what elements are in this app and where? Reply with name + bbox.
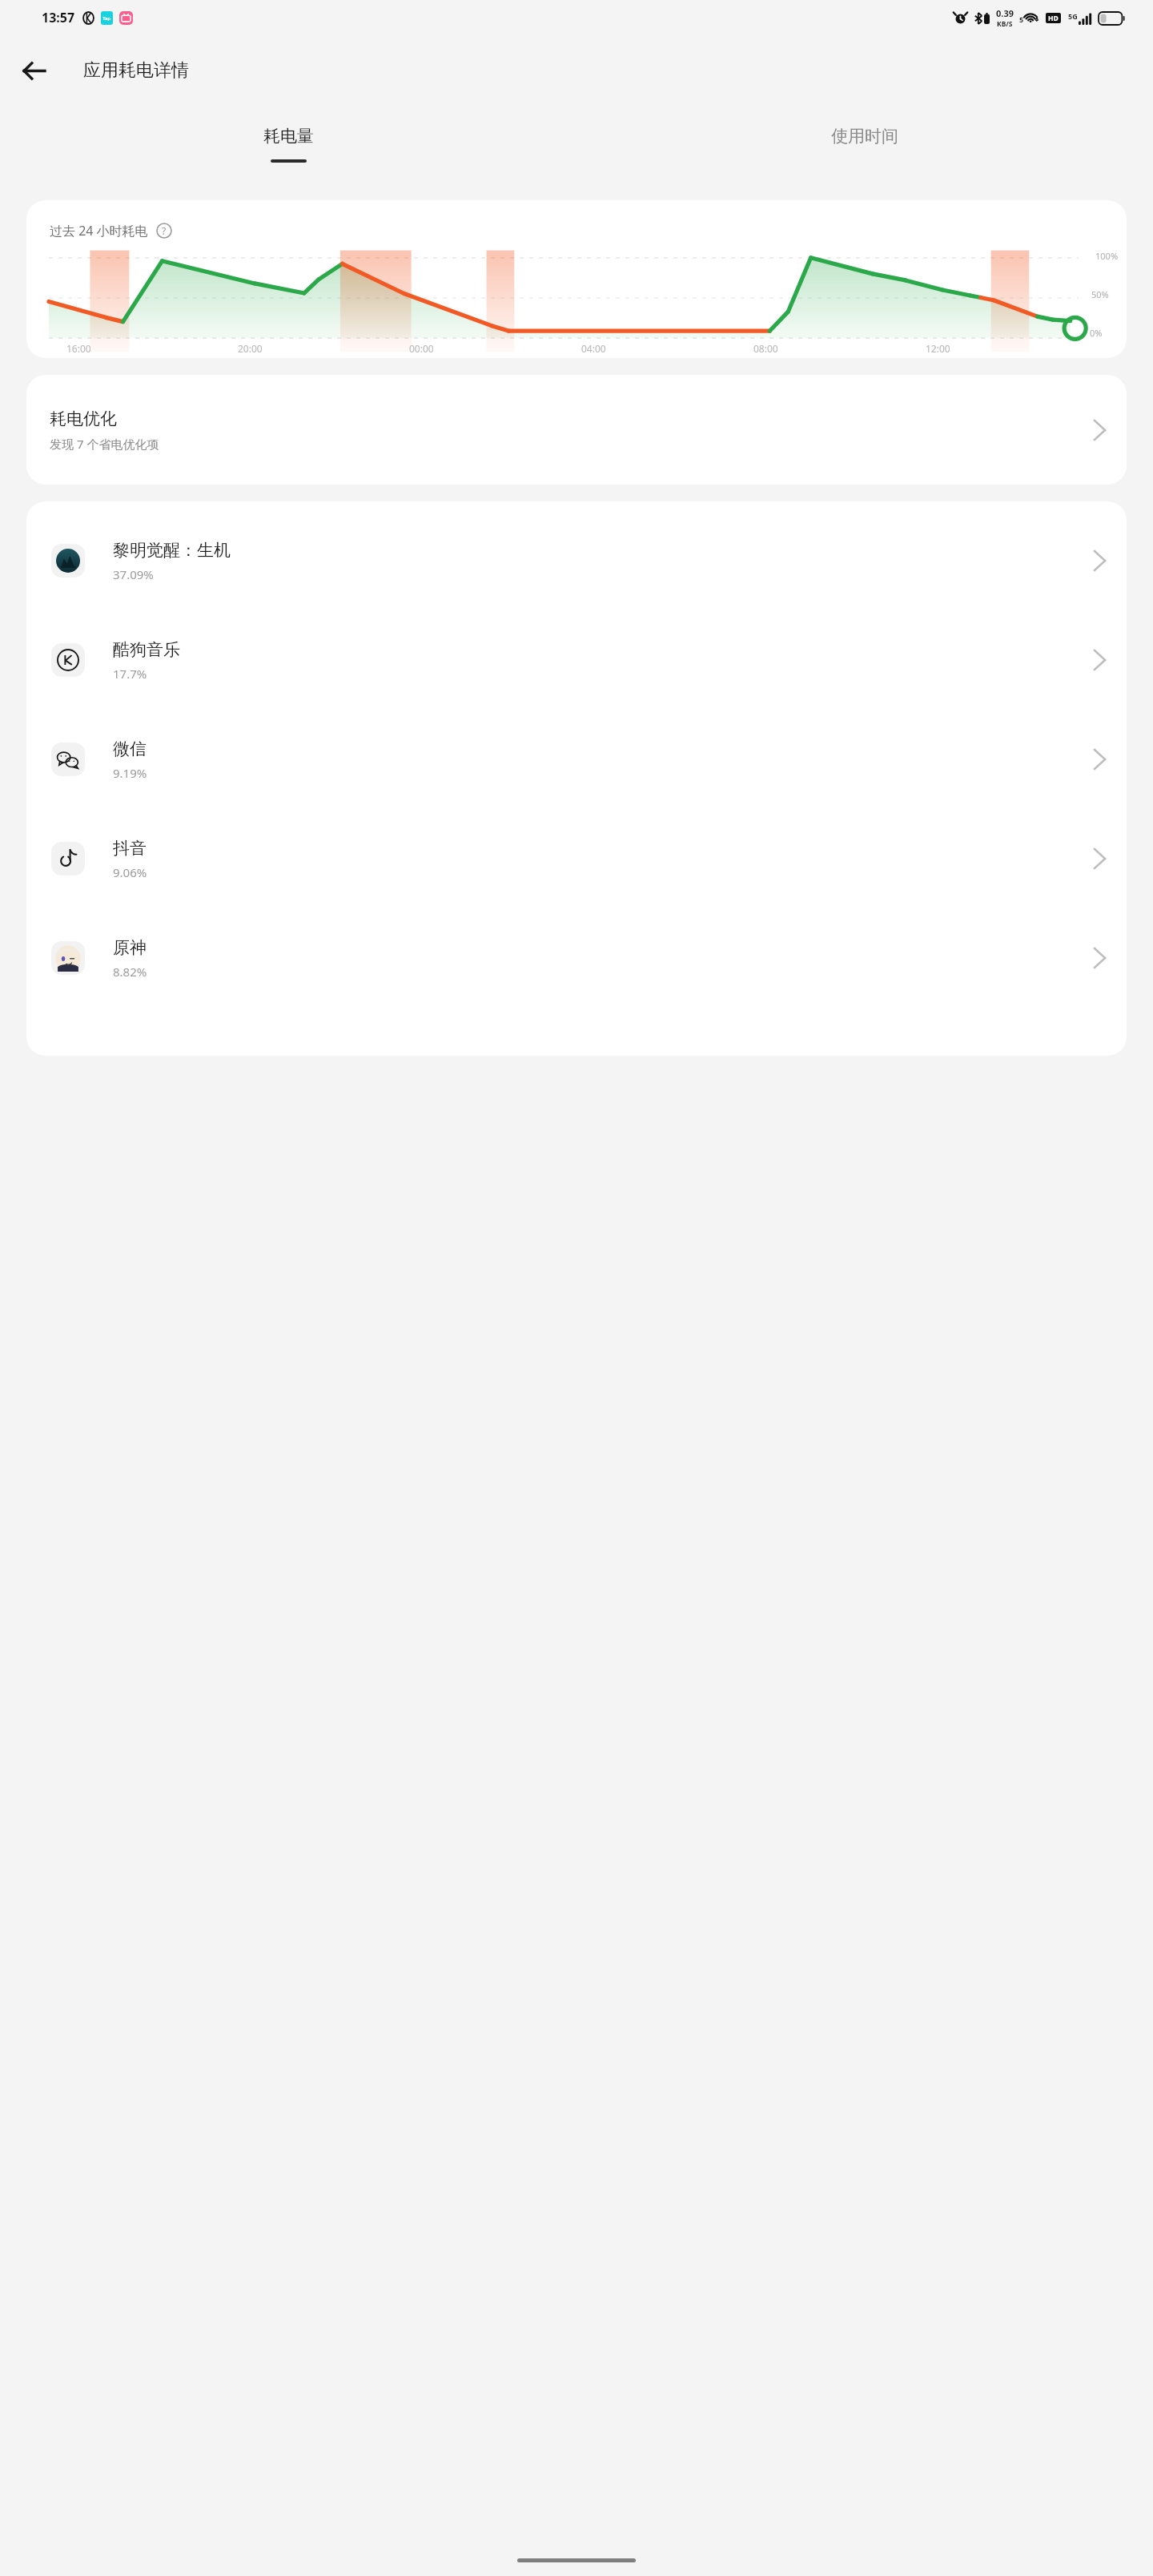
staticText: 16:00 — [66, 342, 91, 355]
button[interactable]: 酷狗音乐 — [26, 610, 1127, 710]
staticText: 耗电优化 — [50, 409, 117, 429]
staticText: 8.82% — [113, 964, 147, 980]
button[interactable]: 微信 — [26, 710, 1127, 809]
button[interactable]: 使用时间 — [576, 106, 1153, 183]
staticText: 9.06% — [113, 864, 147, 880]
button[interactable]: 原神 — [26, 908, 1127, 1008]
staticText: 0.39 — [996, 7, 1014, 19]
staticText: Tap — [102, 15, 111, 22]
staticText: 50% — [1091, 288, 1109, 300]
staticText: 酷狗音乐 — [113, 639, 180, 660]
staticText: 100% — [1095, 250, 1119, 262]
button[interactable]: 黎明觉醒：生机 — [26, 511, 1127, 610]
button[interactable]: 耗电优化 — [26, 375, 1127, 485]
staticText: 00:00 — [409, 342, 434, 355]
staticText: KB/S — [997, 19, 1013, 29]
button[interactable]: 抖音 — [26, 809, 1127, 908]
staticText: 5G — [1068, 11, 1078, 21]
button[interactable]: 说明 — [155, 222, 173, 239]
staticText: 使用时间 — [831, 126, 898, 147]
staticText: 20:00 — [238, 342, 263, 355]
staticText: 12:00 — [926, 342, 950, 355]
staticText: 过去 24 小时耗电 — [50, 222, 148, 239]
staticText: 04:00 — [581, 342, 606, 355]
button[interactable]: 返回 — [11, 48, 56, 93]
staticText: 08:00 — [753, 342, 778, 355]
staticText: 5 — [1019, 14, 1024, 24]
staticText: 原神 — [113, 937, 147, 958]
staticText: 黎明觉醒：生机 — [113, 540, 231, 561]
staticText: 耗电量 — [263, 126, 314, 147]
button[interactable]: 耗电量 — [0, 106, 576, 183]
staticText: 13:57 — [42, 9, 75, 26]
staticText: 应用耗电详情 — [83, 59, 189, 82]
staticText: HD — [1048, 14, 1059, 23]
staticText: ? — [162, 224, 167, 237]
staticText: 37.09% — [113, 566, 154, 582]
staticText: 抖音 — [113, 838, 147, 859]
staticText: 微信 — [113, 739, 147, 759]
staticText: 17.7% — [113, 666, 147, 682]
staticText: 0% — [1090, 327, 1103, 339]
staticText: 9.19% — [113, 765, 147, 781]
staticText: 发现 7 个省电优化项 — [50, 436, 159, 452]
